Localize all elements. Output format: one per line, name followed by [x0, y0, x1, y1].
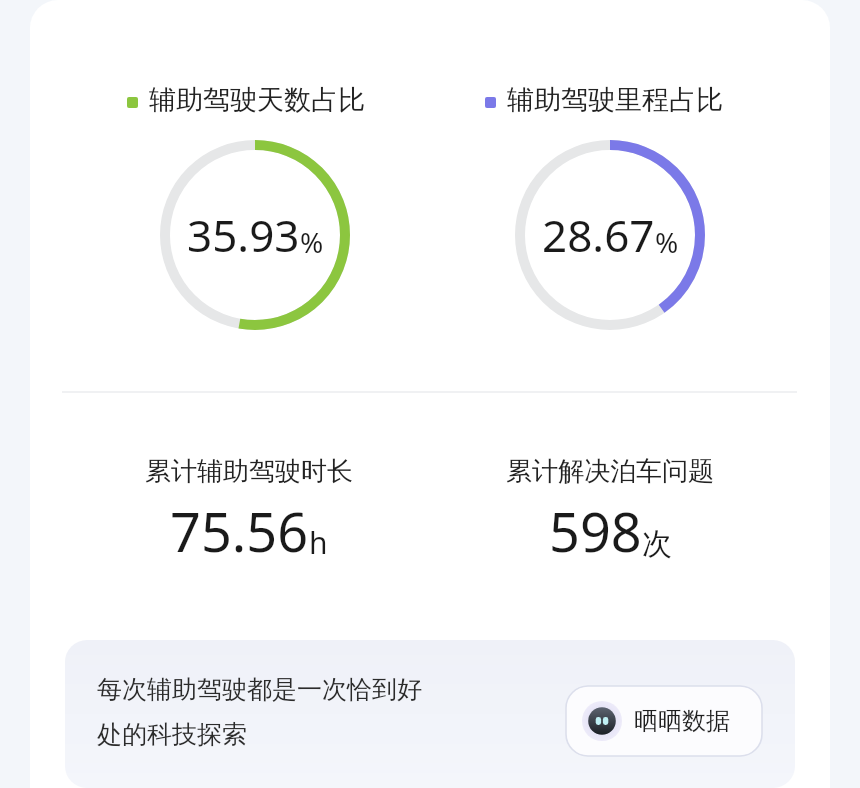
staticText: 累计解决泊车问题	[506, 455, 714, 488]
button[interactable]: 辅助驾驶天数占比	[127, 83, 365, 117]
staticText: 辅助驾驶天数占比	[149, 83, 365, 117]
staticText: 35.93	[187, 205, 300, 265]
other: 晒晒数据	[582, 701, 622, 741]
staticText: %	[655, 223, 679, 261]
staticText: 辅助驾驶里程占比	[507, 83, 723, 117]
staticText: 晒晒数据	[634, 706, 730, 736]
staticText: %	[300, 223, 324, 261]
staticText: 28.67	[542, 205, 655, 265]
staticText: 每次辅助驾驶都是一次恰到好	[97, 674, 422, 705]
button[interactable]: 晒晒数据	[566, 686, 762, 756]
staticText: 累计辅助驾驶时长	[145, 455, 353, 488]
staticText: 75.56	[170, 494, 309, 568]
staticText: 598	[549, 494, 642, 568]
staticText: 处的科技探索	[97, 719, 247, 750]
button[interactable]: 辅助驾驶里程占比	[485, 83, 723, 117]
staticText: 次	[642, 525, 672, 563]
staticText: h	[309, 522, 328, 563]
